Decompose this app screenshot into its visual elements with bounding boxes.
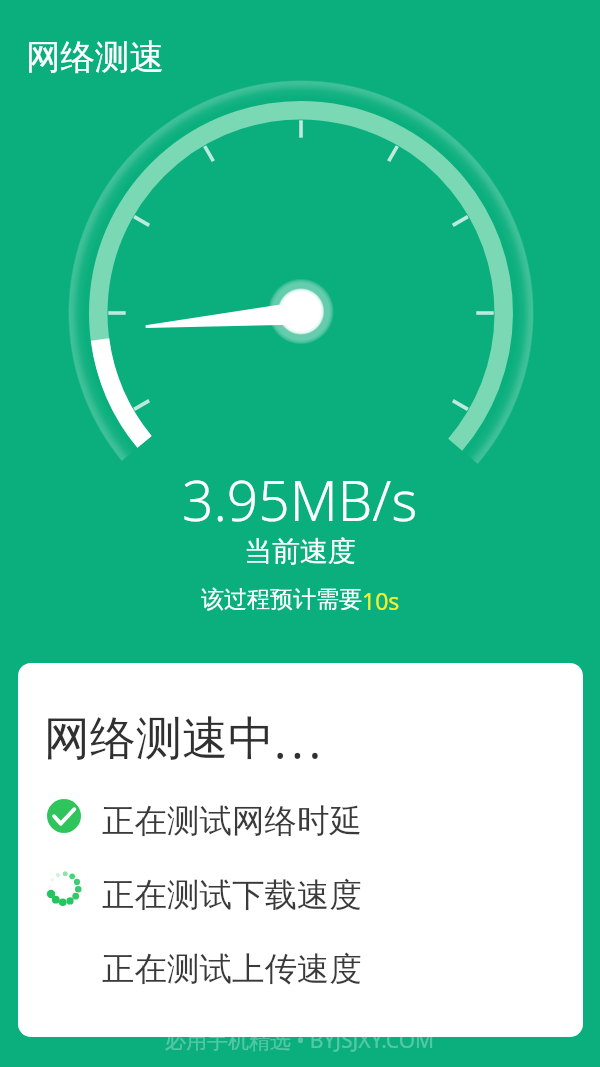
staticText: 网络测速中: [44, 710, 274, 768]
button[interactable]: 正在测试网络时延: [38, 791, 538, 851]
button[interactable]: 正在测试上传速度: [38, 939, 538, 999]
staticText: 正在测试下载速度: [102, 875, 362, 916]
staticText: 正在测试上传速度: [102, 949, 362, 990]
staticText: 正在测试网络时延: [102, 801, 362, 842]
button[interactable]: 正在测试下载速度: [38, 865, 538, 925]
staticText: ...: [274, 710, 326, 773]
staticText: 该过程预计需要: [201, 585, 362, 614]
staticText: 3.95MB/s: [182, 462, 418, 537]
staticText: 必用手机精选 • BYJSJXY.COM: [165, 1026, 435, 1055]
staticText: 10s: [362, 585, 400, 616]
staticText: 当前速度: [244, 534, 356, 569]
staticText: 网络测速: [26, 36, 164, 79]
